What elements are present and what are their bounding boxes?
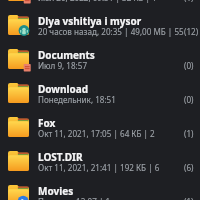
- staticText: (6): [184, 162, 194, 173]
- staticText: Окт 11, 2021, 17:05 | 64 КБ | 2: [38, 128, 155, 139]
- staticText: 20 часов назад, 20:35 | 49,00 МБ | 55: [38, 26, 184, 37]
- button[interactable]: Fox: [0, 113, 200, 147]
- button[interactable]: Backups: [0, 0, 200, 11]
- staticText: LOST.DIR: [38, 150, 83, 164]
- staticText: (1): [184, 0, 194, 3]
- staticText: июл 20, 2022, 09:51 | 32 КБ | 1: [38, 0, 157, 3]
- staticText: Fox: [38, 116, 56, 130]
- staticText: (12): [184, 26, 199, 37]
- staticText: (1): [184, 128, 194, 139]
- button[interactable]: LOST.DIR: [0, 147, 200, 181]
- button[interactable]: Dlya vshitiya i mysor: [0, 11, 200, 45]
- button[interactable]: Movies: [0, 181, 200, 200]
- staticText: Dlya vshitiya i mysor: [38, 14, 142, 28]
- button[interactable]: Download: [0, 79, 200, 113]
- staticText: Download: [38, 82, 88, 96]
- staticText: Понедельник, 18:51: [38, 94, 116, 105]
- staticText: (1): [184, 196, 194, 200]
- staticText: Пятница, 12:07 | 1: [38, 196, 111, 200]
- staticText: Окт 11, 2021, 21:41 | 192 КБ | 6: [38, 162, 160, 173]
- staticText: (0): [184, 94, 194, 105]
- staticText: Movies: [38, 184, 74, 198]
- staticText: Documents: [38, 48, 95, 62]
- staticText: (0): [184, 60, 194, 71]
- button[interactable]: Documents: [0, 45, 200, 79]
- staticText: Июл 9, 18:57: [38, 60, 88, 71]
